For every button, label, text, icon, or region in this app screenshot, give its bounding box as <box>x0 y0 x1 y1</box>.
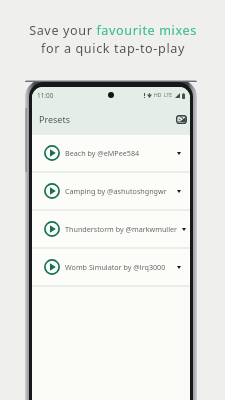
staticText: Thunderstorm by @markwmuller <box>65 224 178 234</box>
staticText: Beach by @eMPee584 <box>65 148 140 158</box>
button[interactable]: Beach by @eMPee584 <box>32 135 190 171</box>
button[interactable]: Thunderstorm by @markwmuller <box>32 211 190 247</box>
button[interactable]: Cast <box>173 111 189 127</box>
button[interactable]: More options <box>178 222 190 236</box>
button[interactable]: More options <box>172 184 186 198</box>
staticText: Camping by @ashutoshgngwr <box>65 186 167 196</box>
staticText: HD <box>154 92 162 99</box>
staticText: LTE <box>164 92 173 99</box>
staticText: 11:00 <box>37 91 54 100</box>
button[interactable]: Camping by @ashutoshgngwr <box>32 173 190 209</box>
staticText: for a quick tap-to-play <box>41 40 185 57</box>
staticText: Womb Simulator by @lrq3000 <box>65 262 166 272</box>
button[interactable]: Womb Simulator by @lrq3000 <box>32 249 190 285</box>
staticText: Presets <box>39 113 71 125</box>
staticText: Save your favourite mixes <box>29 22 197 39</box>
button[interactable]: More options <box>172 146 186 160</box>
button[interactable]: More options <box>172 260 186 274</box>
